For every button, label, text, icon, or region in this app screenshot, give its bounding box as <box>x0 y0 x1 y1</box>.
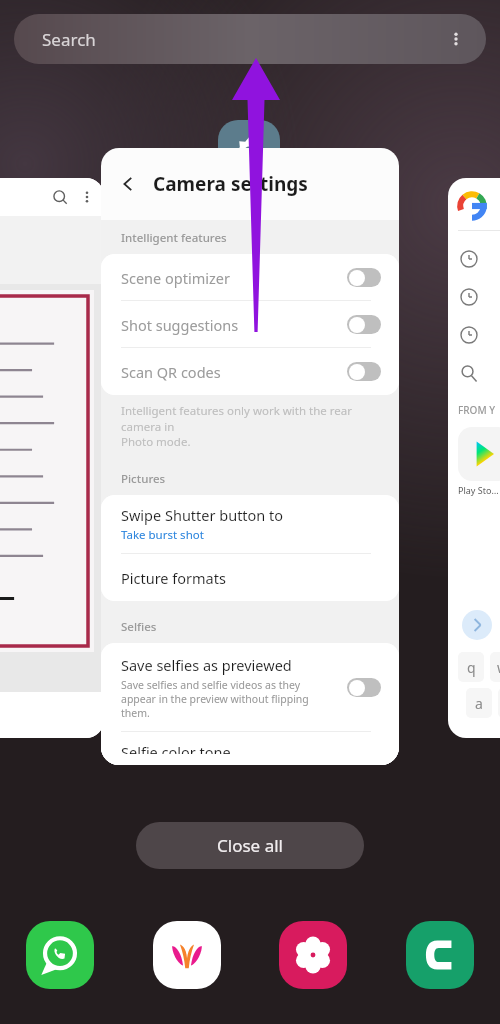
staticText: Close all <box>217 834 283 857</box>
button[interactable]: Gallery <box>279 921 347 989</box>
staticText: Scene optimizer <box>121 268 347 288</box>
staticText: Search <box>42 28 96 51</box>
staticText: Camera settings <box>153 171 308 197</box>
staticText: Selfies <box>121 619 157 635</box>
staticText: Swipe Shutter button to <box>121 505 284 525</box>
button[interactable]: Close all <box>136 822 364 869</box>
button[interactable]: Toggle <box>347 268 381 287</box>
staticText: Save selfies as previewed <box>121 655 292 675</box>
staticText: FROM Y <box>458 403 496 417</box>
staticText: Picture formats <box>121 568 226 588</box>
button[interactable]: Toggle <box>347 315 381 334</box>
staticText: Scan QR codes <box>121 362 347 382</box>
button[interactable]: Toggle <box>347 678 381 697</box>
staticText: Intelligent features <box>121 230 227 246</box>
button[interactable]: Myntra <box>153 921 221 989</box>
staticText: Pictures <box>121 471 166 487</box>
button[interactable]: Shot suggestions <box>121 301 381 348</box>
staticText: Save selfies and selfie videos as they a… <box>121 678 309 720</box>
staticText: Take burst shot <box>121 527 204 543</box>
button[interactable] <box>0 178 104 738</box>
staticText: Shot suggestions <box>121 315 347 335</box>
staticText: Selfie color tone <box>121 742 231 754</box>
button[interactable]: Picture formats <box>121 554 399 601</box>
button[interactable]: Phone <box>406 921 474 989</box>
button[interactable]: Search <box>14 14 486 64</box>
button[interactable]: Save selfies as previewed <box>121 655 381 720</box>
button[interactable]: WhatsApp <box>26 921 94 989</box>
button[interactable]: Camera settings app icon <box>218 120 280 182</box>
button[interactable]: Selfie color tone <box>121 742 399 754</box>
staticText: a <box>475 694 483 713</box>
button[interactable]: Scan QR codes <box>121 348 381 395</box>
button[interactable]: Swipe Shutter button to <box>121 505 399 543</box>
staticText: Intelligent features only work with the … <box>121 403 379 449</box>
staticText: q <box>467 658 476 677</box>
button[interactable]: Toggle <box>347 362 381 381</box>
button[interactable]: More options <box>440 23 472 55</box>
button[interactable]: Camera settings <box>101 148 399 765</box>
staticText: w <box>497 658 500 677</box>
staticText: Play Sto… <box>458 484 499 496</box>
button[interactable]: Scene optimizer <box>121 254 381 301</box>
button[interactable]: FROM Y <box>448 178 500 738</box>
